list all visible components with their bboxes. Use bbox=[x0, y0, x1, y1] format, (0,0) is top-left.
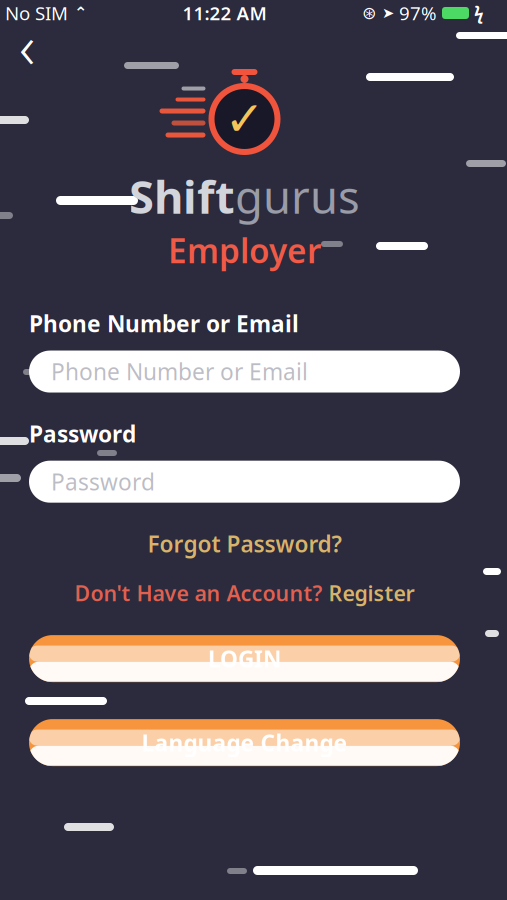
staticText: ‹ bbox=[19, 4, 35, 86]
staticText: Register bbox=[328, 579, 414, 607]
button[interactable]: Language Change bbox=[29, 719, 460, 766]
button[interactable]: Forgot Password? bbox=[137, 523, 351, 565]
staticText: Password bbox=[29, 419, 136, 449]
staticText: Phone Number or Email bbox=[51, 356, 308, 387]
staticText: gurus bbox=[235, 166, 360, 226]
staticText: LOGIN bbox=[208, 643, 281, 674]
staticText: ⌃ bbox=[68, 4, 87, 22]
staticText: ϟ bbox=[474, 1, 484, 24]
button[interactable]: LOGIN bbox=[29, 635, 460, 682]
button[interactable]: Don't Have an Account? bbox=[64, 573, 424, 613]
staticText: ⊛ bbox=[362, 3, 377, 23]
staticText: 11:22 AM bbox=[182, 1, 266, 25]
staticText: Phone Number or Email bbox=[29, 308, 299, 339]
staticText: Forgot Password? bbox=[147, 529, 341, 559]
staticText: 97% bbox=[399, 1, 437, 25]
staticText: ✓ bbox=[224, 92, 264, 146]
staticText: Don't Have an Account? bbox=[74, 579, 322, 607]
staticText: ➤ bbox=[382, 5, 394, 21]
staticText: Password bbox=[51, 467, 155, 497]
staticText: Shift bbox=[129, 166, 235, 226]
staticText: No SIM bbox=[5, 1, 68, 25]
staticText: Language Change bbox=[141, 727, 347, 758]
staticText: Employer bbox=[168, 228, 321, 272]
button[interactable]: Back bbox=[5, 23, 49, 67]
